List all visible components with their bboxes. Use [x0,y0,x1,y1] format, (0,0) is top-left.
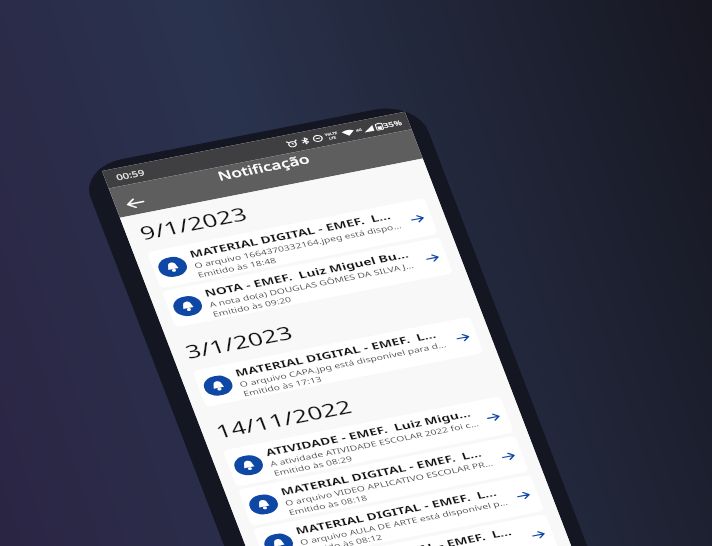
button[interactable]: Abrir notificação [478,406,508,428]
staticText: 35% [381,118,403,130]
staticText: 14/11/2022 [211,393,356,444]
button[interactable]: ATIVIDADE - EMEF. Luiz Miguel ... [222,396,515,487]
staticText: VoLTE [324,131,339,137]
staticText: MATERIAL DIGITAL - EMEF. Luiz Miguel ... [308,523,523,546]
button[interactable]: NOTA - EMEF. Luiz Miguel Budaruiche [161,237,454,328]
staticText: A nota do(a) DOUGLAS GÔMES DA SILVA JOÃO… [207,259,420,309]
button[interactable]: Abrir notificação [402,208,432,229]
staticText: MATERIAL DIGITAL - EMEF. Luiz Miguel ... [293,484,508,538]
staticText: MATERIAL DIGITAL - EMEF. Luiz Miguel ... [278,444,493,498]
button[interactable]: Voltar [117,190,153,216]
staticText: Emitido às 09:20 [211,294,293,319]
staticText: ATIVIDADE - EMEF. Luiz Miguel ... [263,405,478,459]
staticText: 3/1/2023 [181,319,297,364]
staticText: O arquivo AULA DE ARTE está disponível p… [298,497,511,546]
button[interactable]: Abrir notificação [508,485,538,506]
staticText: Emitido às 17:13 [241,373,324,398]
button[interactable]: Abrir notificação [523,524,553,545]
staticText: 00:59 [114,167,147,183]
staticText: O arquivo 1664370332164.jpeg está dispon… [192,220,405,270]
staticText: Emitido às 08:29 [272,453,354,478]
staticText: Emitido às 18:48 [196,255,278,280]
button[interactable]: Abrir notificação [447,327,477,348]
staticText: MATERIAL DIGITAL - EMEF. Luiz Miguel ... [232,326,447,380]
staticText: Emitido às 08:18 [287,492,369,517]
staticText: LTE [328,135,338,141]
staticText: Emitido às 08:12 [302,531,384,546]
button[interactable]: MATERIAL DIGITAL - EMEF. Luiz Miguel ... [237,435,530,526]
button[interactable]: Abrir notificação [493,446,523,467]
button[interactable]: MATERIAL DIGITAL - EMEF. Luiz Miguel ... [146,197,439,289]
staticText: Notificação [215,150,313,184]
staticText: 4G [355,128,363,133]
staticText: 9/1/2023 [135,201,251,246]
button[interactable]: MATERIAL DIGITAL - EMEF. Luiz Miguel ... [267,513,560,546]
staticText: NOTA - EMEF. Luiz Miguel Budaruiche [202,246,417,300]
staticText: O arquivo CAPA.jpg está disponível para … [237,339,451,389]
staticText: A atividade ATIVIDADE ESCOLAR 2022 foi c… [268,418,481,469]
button[interactable]: MATERIAL DIGITAL - EMEF. Luiz Miguel ... [191,316,485,407]
staticText: O arquivo VIDEO APLICATIVO ESCOLAR PREMI… [283,457,496,508]
button[interactable]: Abrir notificação [417,247,447,268]
button[interactable]: MATERIAL DIGITAL - EMEF. Luiz Miguel ... [252,474,545,546]
staticText: MATERIAL DIGITAL - EMEF. Luiz Miguel ... [187,207,402,261]
